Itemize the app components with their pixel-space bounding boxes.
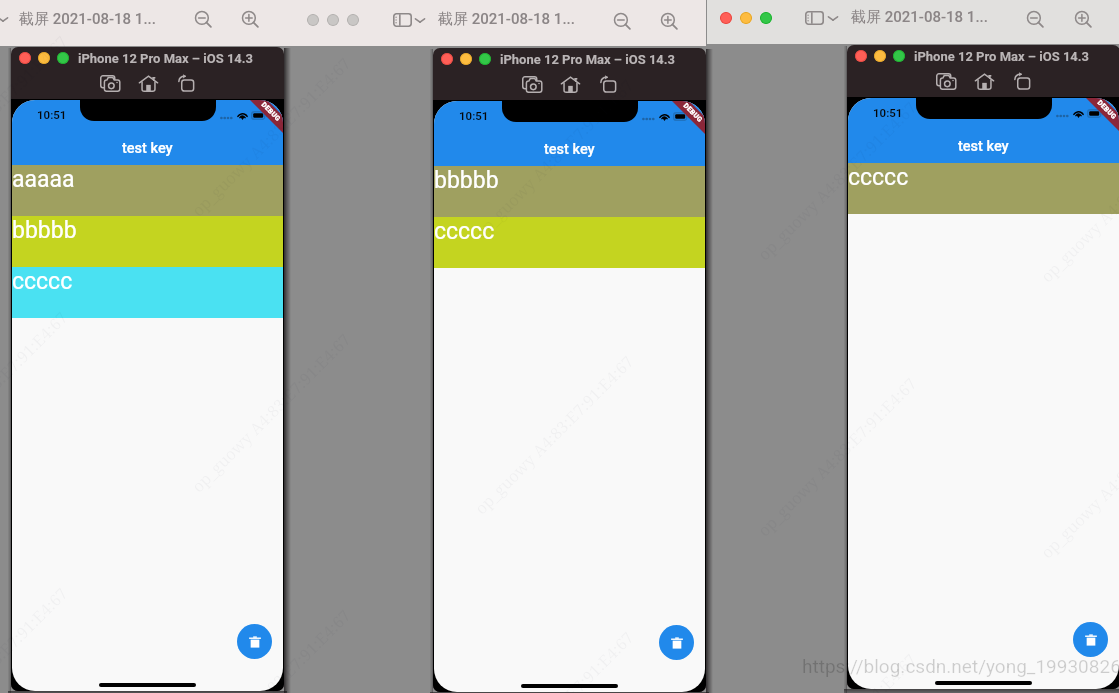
staticText: ccccc [12, 268, 73, 295]
staticText: 10:51 [37, 108, 67, 121]
button[interactable]: Home [136, 71, 160, 95]
staticText: DEBUG [260, 101, 282, 123]
staticText: op_guowy A4:83:E7:91:E4:67 [1036, 671, 1119, 693]
button[interactable]: Zoom in [1074, 10, 1096, 32]
button[interactable]: Window control [441, 53, 453, 65]
button[interactable]: Window control [893, 50, 905, 62]
button[interactable]: Window control [760, 12, 772, 24]
staticText: DEBUG [682, 102, 704, 124]
staticText: op_guowy A4:83:E7:91:E4:67 [187, 605, 355, 693]
button[interactable]: Window control [38, 52, 50, 64]
button[interactable]: Zoom out [194, 10, 216, 32]
staticText: 截屏 2021-08-18 1... [438, 10, 575, 29]
staticText: iPhone 12 Pro Max – iOS 14.3 [914, 49, 1090, 64]
button[interactable]: Window control [874, 50, 886, 62]
staticText: 10:51 [873, 106, 903, 119]
button[interactable]: Home [972, 69, 996, 93]
button[interactable]: Window control [57, 52, 69, 64]
staticText: 10:51 [459, 109, 489, 122]
button[interactable]: bbbbb [12, 216, 283, 267]
button[interactable]: Delete [659, 625, 694, 660]
button[interactable]: Show sidebar [390, 9, 415, 31]
staticText: op_guowy A4:83:E7:91:E4:67 [1036, 119, 1119, 287]
staticText: op_guowy A4:83:E7:91:E4:67 [0, 31, 72, 199]
button[interactable]: Window control [855, 50, 867, 62]
staticText: iPhone 12 Pro Max – iOS 14.3 [500, 52, 676, 67]
button[interactable]: Zoom out [1026, 10, 1048, 32]
button[interactable]: Window control [460, 53, 472, 65]
button[interactable]: bbbbb [434, 166, 705, 217]
staticText: op_guowy A4:83:E7:91:E4:67 [470, 75, 638, 243]
staticText: 截屏 2021-08-18 1... [851, 8, 988, 27]
button[interactable]: aaaaa [12, 165, 283, 216]
button[interactable]: Delete [1073, 622, 1108, 657]
button[interactable]: Sidebar options [0, 13, 9, 25]
staticText: test key [544, 141, 595, 158]
button[interactable]: Window control [327, 14, 339, 26]
button[interactable]: ccccc [434, 217, 705, 268]
staticText: bbbbb [434, 167, 499, 194]
button[interactable]: Home [558, 72, 582, 96]
button[interactable]: Window control [479, 53, 491, 65]
button[interactable]: Rotate [596, 72, 620, 96]
button[interactable]: Window control [740, 12, 752, 24]
button[interactable]: Zoom in [660, 12, 682, 34]
staticText: op_guowy A4:83:E7:91:E4:67 [753, 97, 921, 265]
staticText: ccccc [434, 218, 495, 245]
button[interactable]: Window control [307, 14, 319, 26]
staticText: op_guowy A4:83:E7:91:E4:67 [753, 373, 921, 541]
button[interactable]: Show sidebar [802, 7, 827, 29]
staticText: op_guowy A4:83:E7:91:E4:67 [0, 583, 72, 693]
button[interactable]: Sidebar options [827, 12, 839, 24]
button[interactable]: Sidebar options [414, 14, 426, 26]
staticText: DEBUG [1096, 99, 1118, 121]
staticText: op_guowy A4:83:E7:91:E4:67 [753, 649, 921, 693]
button[interactable]: Zoom in [241, 10, 263, 32]
button[interactable]: Screenshot [98, 71, 122, 95]
button[interactable]: Screenshot [934, 69, 958, 93]
button[interactable]: Window control [19, 52, 31, 64]
staticText: op_guowy A4:83:E7:91:E4:67 [187, 329, 355, 497]
staticText: https://blog.csdn.net/yong_19930826 [802, 655, 1119, 677]
staticText: 截屏 2021-08-18 1... [19, 10, 156, 29]
staticText: test key [958, 138, 1009, 155]
staticText: iPhone 12 Pro Max – iOS 14.3 [78, 51, 254, 66]
button[interactable]: ccccc [12, 267, 283, 318]
staticText: bbbbb [12, 217, 77, 244]
button[interactable]: Screenshot [520, 72, 544, 96]
staticText: op_guowy A4:83:E7:91:E4:67 [470, 627, 638, 693]
button[interactable]: Zoom out [613, 12, 635, 34]
staticText: test key [122, 140, 173, 157]
button[interactable]: Rotate [174, 71, 198, 95]
staticText: aaaaa [12, 166, 75, 193]
staticText: op_guowy A4:83:E7:91:E4:67 [187, 53, 355, 221]
button[interactable]: ccccc [848, 163, 1119, 214]
button[interactable]: Window control [720, 12, 732, 24]
staticText: op_guowy A4:83:E7:91:E4:67 [0, 307, 72, 475]
staticText: ccccc [848, 164, 909, 191]
button[interactable]: Rotate [1010, 69, 1034, 93]
button[interactable]: Window control [347, 14, 359, 26]
button[interactable]: Delete [237, 624, 272, 659]
